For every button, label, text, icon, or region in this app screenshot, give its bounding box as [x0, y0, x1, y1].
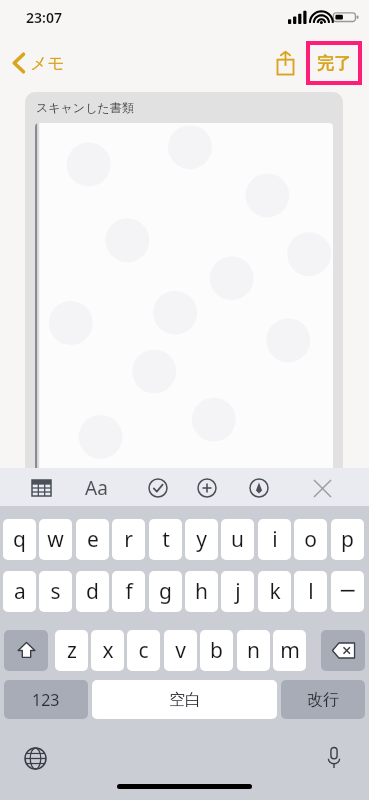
- button[interactable]: 123: [4, 680, 88, 719]
- button[interactable]: シフト: [4, 630, 48, 671]
- staticText: v: [175, 636, 186, 665]
- staticText: s: [50, 577, 61, 606]
- staticText: c: [138, 636, 149, 665]
- button[interactable]: v: [164, 630, 197, 671]
- button[interactable]: o: [294, 519, 327, 560]
- staticText: Aa: [85, 475, 108, 501]
- staticText: g: [159, 577, 172, 606]
- staticText: q: [13, 525, 26, 554]
- staticText: t: [162, 525, 170, 554]
- button[interactable]: r: [112, 519, 145, 560]
- button[interactable]: 改行: [281, 680, 365, 719]
- button[interactable]: i: [258, 519, 291, 560]
- button[interactable]: チェックリスト: [141, 471, 175, 505]
- staticText: m: [280, 636, 300, 665]
- button[interactable]: b: [200, 630, 233, 671]
- button[interactable]: m: [273, 630, 306, 671]
- button[interactable]: j: [221, 571, 254, 612]
- button[interactable]: 共有: [268, 46, 302, 80]
- button[interactable]: 音声入力: [316, 740, 352, 776]
- button[interactable]: 削除: [321, 630, 365, 671]
- staticText: a: [14, 577, 26, 606]
- button[interactable]: g: [149, 571, 182, 612]
- button[interactable]: 空白: [92, 680, 277, 719]
- staticText: b: [210, 636, 223, 665]
- button[interactable]: 追加: [190, 471, 224, 505]
- button[interactable]: z: [55, 630, 88, 671]
- staticText: j: [235, 577, 241, 606]
- button[interactable]: l: [294, 571, 327, 612]
- button[interactable]: 地球儀: [17, 740, 53, 776]
- staticText: i: [272, 525, 278, 554]
- button[interactable]: y: [185, 519, 218, 560]
- button[interactable]: c: [127, 630, 160, 671]
- button[interactable]: Aa: [76, 471, 116, 505]
- button[interactable]: t: [149, 519, 182, 560]
- staticText: h: [195, 577, 208, 606]
- button[interactable]: q: [3, 519, 36, 560]
- button[interactable]: ー: [331, 571, 364, 612]
- staticText: メモ: [30, 53, 65, 74]
- staticText: r: [124, 525, 133, 554]
- button[interactable]: d: [76, 571, 109, 612]
- staticText: ー: [339, 581, 356, 602]
- button[interactable]: メモ: [8, 44, 69, 82]
- button[interactable]: s: [39, 571, 72, 612]
- button[interactable]: n: [237, 630, 270, 671]
- button[interactable]: マークアップ: [242, 471, 276, 505]
- staticText: 空白: [169, 690, 201, 710]
- button[interactable]: a: [3, 571, 36, 612]
- staticText: 完了: [317, 53, 351, 74]
- button[interactable]: p: [331, 519, 364, 560]
- staticText: f: [125, 577, 133, 606]
- staticText: n: [247, 636, 260, 665]
- staticText: d: [86, 577, 99, 606]
- button[interactable]: e: [76, 519, 109, 560]
- staticText: o: [304, 525, 317, 554]
- button[interactable]: k: [258, 571, 291, 612]
- staticText: u: [231, 525, 244, 554]
- staticText: z: [67, 636, 77, 665]
- staticText: 123: [32, 689, 60, 711]
- button[interactable]: f: [112, 571, 145, 612]
- button[interactable]: x: [91, 630, 124, 671]
- button[interactable]: w: [39, 519, 72, 560]
- staticText: w: [47, 525, 64, 554]
- button[interactable]: 完了: [310, 45, 358, 81]
- staticText: y: [196, 525, 207, 554]
- staticText: e: [87, 525, 99, 554]
- staticText: スキャンした書類: [36, 100, 134, 115]
- staticText: 23:07: [26, 8, 62, 27]
- button[interactable]: スキャンした書類: [25, 92, 343, 468]
- staticText: p: [341, 525, 354, 554]
- staticText: 改行: [307, 690, 339, 710]
- button[interactable]: 閉じる: [305, 471, 339, 505]
- staticText: k: [269, 577, 281, 606]
- button[interactable]: h: [185, 571, 218, 612]
- staticText: x: [102, 636, 114, 665]
- button[interactable]: 表: [24, 471, 58, 505]
- staticText: l: [308, 577, 314, 606]
- button[interactable]: u: [221, 519, 254, 560]
